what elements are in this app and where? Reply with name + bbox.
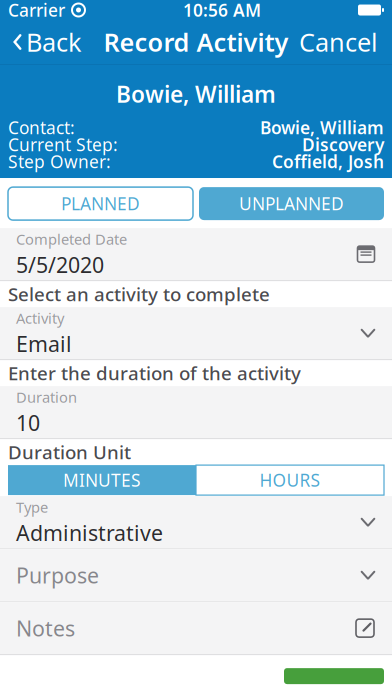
staticText: Completed Date [16,229,127,249]
staticText: Record Activity [103,25,288,59]
staticText: PLANNED [61,192,140,215]
button[interactable]: Back [0,20,94,64]
staticText: Enter the duration of the activity [8,361,301,385]
staticText: Bowie, William [260,116,384,139]
staticText: Select an activity to complete [8,282,270,306]
button[interactable]: Type [0,496,392,548]
staticText: Email [16,330,72,358]
button[interactable]: MINUTES [8,465,196,495]
staticText: 10:56 AM [183,0,261,21]
staticText: Duration Unit [8,440,131,464]
button[interactable]: Completed Date [0,228,392,280]
staticText: Carrier [8,0,65,21]
button[interactable]: Duration [0,386,392,438]
button[interactable]: UNPLANNED [199,187,384,220]
staticText: Bowie, William [116,79,276,109]
staticText: 5/5/2020 [16,251,104,279]
staticText: Notes [16,614,75,642]
staticText: Duration [16,387,77,407]
staticText: UNPLANNED [239,192,344,215]
staticText: Type [16,497,48,517]
staticText: Contact: [8,116,75,139]
button[interactable]: Purpose [0,549,392,601]
staticText: Current Step: [8,133,118,156]
button[interactable]: Save [284,668,384,684]
staticText: Activity [16,308,64,328]
button[interactable]: Cancel [285,20,392,64]
staticText: Coffield, Josh [272,150,384,173]
button[interactable]: PLANNED [8,187,193,220]
staticText: Purpose [16,561,99,589]
button[interactable]: HOURS [196,465,384,495]
staticText: HOURS [259,469,320,492]
staticText [65,0,71,25]
staticText: 10 [16,409,40,437]
staticText: Back [26,25,82,59]
staticText: Administrative [16,519,163,547]
staticText: MINUTES [63,469,141,492]
staticText: Step Owner: [8,150,111,173]
staticText: Discovery [302,133,384,156]
button[interactable]: Notes [0,602,392,654]
button[interactable]: Activity [0,307,392,359]
staticText: Cancel [299,25,378,59]
